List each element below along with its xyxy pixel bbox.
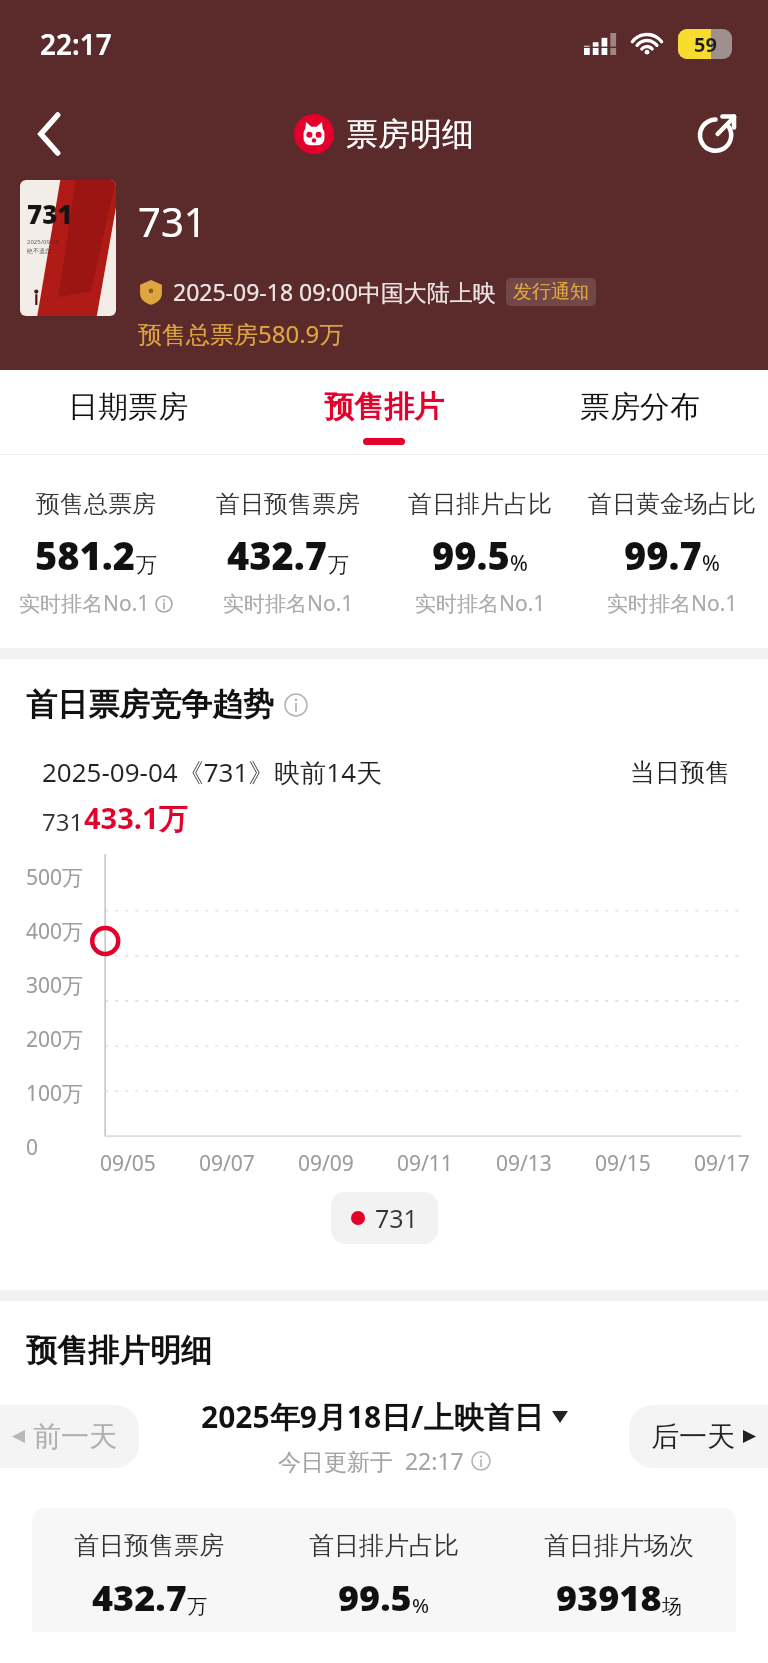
staticText: 731: [138, 194, 207, 248]
button[interactable]: 预售排片: [256, 370, 512, 454]
staticText: 731: [375, 1201, 418, 1235]
button[interactable]: 首日排片占比: [384, 489, 576, 618]
staticText: 万: [136, 552, 157, 578]
staticText: 当日预售: [630, 757, 730, 788]
staticText: 09/09: [298, 1149, 354, 1178]
staticText: 99.5: [432, 529, 510, 581]
staticText: %: [412, 1592, 430, 1619]
staticText: 500万: [26, 863, 84, 892]
button[interactable]: 731: [351, 1201, 418, 1235]
staticText: 预售排片: [324, 388, 444, 426]
button[interactable]: Share: [688, 106, 744, 162]
staticText: 首日排片占比: [309, 1530, 459, 1561]
button[interactable]: 预售总票房: [0, 489, 192, 618]
button[interactable]: 前一天: [0, 1405, 139, 1468]
staticText: 场: [662, 1594, 682, 1619]
staticText: 100万: [26, 1079, 84, 1108]
staticText: 09/17: [694, 1149, 750, 1178]
staticText: 2025年9月18日/上映首日: [201, 1396, 544, 1437]
staticText: 万: [187, 1594, 207, 1619]
staticText: 09/07: [199, 1149, 255, 1178]
staticText: 731: [42, 805, 84, 838]
staticText: 433.1万: [84, 798, 188, 838]
staticText: 432.7: [92, 1573, 187, 1622]
staticText: 731: [27, 196, 73, 231]
button[interactable]: 首日预售票房: [32, 1508, 736, 1632]
staticText: 票房明细: [346, 114, 474, 154]
staticText: 0: [26, 1133, 39, 1162]
staticText: 实时排名No.1: [223, 589, 354, 618]
staticText: %: [510, 549, 528, 578]
staticText: 99.7: [624, 529, 702, 581]
button[interactable]: Back: [22, 106, 78, 162]
staticText: 首日黄金场占比: [588, 489, 756, 519]
staticText: 后一天: [651, 1419, 735, 1454]
button[interactable]: 首日黄金场占比: [576, 489, 768, 618]
staticText: 200万: [26, 1025, 84, 1054]
staticText: 首日排片占比: [408, 489, 552, 519]
staticText: 09/15: [595, 1149, 651, 1178]
staticText: 59: [694, 31, 717, 58]
staticText: 前一天: [33, 1419, 117, 1454]
button[interactable]: 2025-09-04《731》映前14天: [20, 740, 748, 854]
staticText: 09/05: [100, 1149, 156, 1178]
staticText: 首日排片场次: [544, 1530, 694, 1561]
staticText: 09/11: [397, 1149, 453, 1178]
staticText: %: [702, 549, 720, 578]
staticText: 300万: [26, 971, 84, 1000]
staticText: 首日预售票房: [74, 1530, 224, 1561]
staticText: 预售总票房580.9万: [138, 317, 344, 350]
staticText: 实时排名No.1: [607, 589, 738, 618]
staticText: 万: [328, 552, 349, 578]
staticText: 发行通知: [513, 280, 589, 304]
staticText: 首日预售票房: [216, 489, 360, 519]
staticText: 22:17: [40, 25, 112, 63]
staticText: 2025-09-18 09:00中国大陆上映: [173, 276, 496, 307]
staticText: 400万: [26, 917, 84, 946]
button[interactable]: 票房分布: [512, 370, 768, 454]
staticText: 票房分布: [580, 388, 700, 426]
staticText: 今日更新于 22:17: [278, 1445, 464, 1476]
button[interactable]: 731: [20, 180, 116, 316]
staticText: 预售总票房: [36, 489, 156, 519]
staticText: 93918: [556, 1573, 662, 1622]
staticText: 09/13: [496, 1149, 552, 1178]
staticText: 首日票房竞争趋势: [26, 685, 274, 724]
button[interactable]: 发行通知: [513, 280, 589, 304]
button[interactable]: 2025年9月18日/上映首日: [201, 1396, 568, 1476]
staticText: 实时排名No.1: [415, 589, 546, 618]
staticText: 实时排名No.1: [19, 589, 150, 618]
staticText: 2025-09-04《731》映前14天: [42, 754, 383, 790]
staticText: 581.2: [35, 529, 136, 581]
staticText: 日期票房: [68, 388, 188, 426]
staticText: 432.7: [227, 529, 328, 581]
staticText: 预售排片明细: [26, 1331, 212, 1370]
staticText: 2025/09/18 绝不遗忘: [27, 238, 59, 255]
button[interactable]: 后一天: [629, 1405, 768, 1468]
button[interactable]: 日期票房: [0, 370, 256, 454]
button[interactable]: 首日预售票房: [192, 489, 384, 618]
staticText: 99.5: [338, 1573, 412, 1622]
